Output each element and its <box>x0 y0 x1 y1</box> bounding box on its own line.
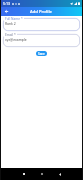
button[interactable]: Save <box>36 51 47 56</box>
button[interactable]: Full Name * <box>3 18 80 31</box>
staticText: Full Name * <box>5 17 23 21</box>
button[interactable]: Recent apps <box>19 169 29 179</box>
button[interactable]: Home <box>37 169 47 179</box>
button[interactable]: Email * <box>3 34 80 47</box>
staticText: Rank 2 <box>5 21 16 26</box>
staticText: Add Profile <box>30 9 52 15</box>
staticText: 5:13 <box>3 1 11 6</box>
staticText: Save <box>38 52 45 56</box>
button[interactable]: Back <box>55 169 65 179</box>
staticText: Email * <box>5 33 16 37</box>
button[interactable]: Back <box>3 8 10 15</box>
staticText: xyz@example <box>5 37 27 42</box>
